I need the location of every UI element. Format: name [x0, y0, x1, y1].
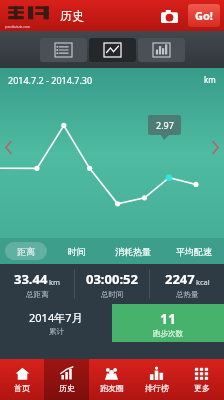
button[interactable]: 03:00:52	[75, 264, 149, 304]
button[interactable]: 首页	[0, 359, 44, 400]
staticText: 平均配速	[176, 246, 212, 257]
button[interactable]: Go!	[188, 4, 220, 27]
button[interactable]: 时间	[51, 238, 102, 264]
button[interactable]: 33.44	[0, 264, 74, 304]
staticText: 排行榜	[145, 383, 169, 393]
button[interactable]: 2014年7月	[0, 304, 112, 342]
button[interactable]: Camera	[156, 3, 182, 29]
staticText: 总热量	[176, 290, 199, 299]
staticText: km	[49, 277, 61, 287]
button[interactable]: 消耗热量	[102, 238, 163, 264]
button[interactable]: List view	[40, 38, 87, 62]
button[interactable]: Line chart	[89, 38, 136, 62]
staticText: 累计	[49, 327, 64, 336]
staticText: 历史	[60, 8, 84, 23]
staticText: kcal	[196, 277, 210, 287]
staticText: 2.97	[156, 119, 174, 131]
staticText: 11	[160, 309, 177, 328]
staticText: 更多	[194, 383, 210, 393]
staticText: km	[204, 74, 216, 85]
staticText: 跑步次数	[153, 329, 183, 338]
staticText: 首页	[14, 383, 30, 393]
staticText: 2014.7.2 - 2014.7.30	[8, 74, 93, 86]
staticText: 时间	[68, 246, 86, 257]
button[interactable]: 距离	[0, 238, 51, 264]
staticText: 03:00:52	[86, 270, 138, 288]
staticText: 2014年7月	[29, 310, 83, 325]
staticText: 距离	[17, 246, 35, 257]
staticText: 跑友圈	[100, 383, 124, 393]
button[interactable]: 历史	[44, 359, 89, 400]
staticText: 总距离	[26, 290, 49, 299]
staticText: paoda.tuiz.com	[5, 24, 31, 29]
button[interactable]: Logo	[3, 2, 55, 29]
button[interactable]: 排行榜	[134, 359, 179, 400]
staticText: 历史	[59, 383, 75, 393]
button[interactable]: 11	[112, 304, 224, 342]
button[interactable]: 平均配速	[163, 238, 224, 264]
button[interactable]: 跑友圈	[89, 359, 134, 400]
staticText: 消耗热量	[115, 246, 151, 257]
staticText: 2247	[165, 270, 195, 288]
button[interactable]: 2247	[150, 264, 224, 304]
button[interactable]: Bar chart	[138, 38, 185, 62]
staticText: 33.44	[14, 270, 48, 288]
button[interactable]: 更多	[179, 359, 224, 400]
staticText: 总时间	[101, 290, 124, 299]
staticText: Go!	[195, 8, 213, 23]
